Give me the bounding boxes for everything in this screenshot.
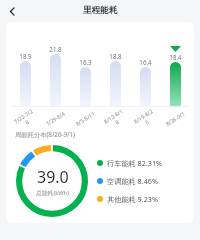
staticText: 18.4 bbox=[169, 53, 182, 61]
staticText: 18.8 bbox=[109, 52, 122, 60]
staticText: 8/12-8/18 bbox=[101, 107, 129, 131]
staticText: 8/19-8/25 bbox=[131, 107, 159, 131]
staticText: 18.9 bbox=[19, 52, 32, 60]
staticText: 其他能耗 9.23% bbox=[107, 194, 158, 204]
staticText: 8/5-8/11 bbox=[73, 109, 97, 128]
button[interactable]: 其他能耗 9.23% bbox=[97, 194, 158, 204]
staticText: 21.8 bbox=[49, 45, 62, 53]
staticText: 7/22-7/28 bbox=[11, 107, 39, 131]
staticText: 8/26-9/1 bbox=[163, 109, 187, 128]
staticText: 行车能耗 82.31% bbox=[107, 158, 162, 168]
staticText: 39.0 bbox=[37, 166, 69, 188]
staticText: 16.4 bbox=[139, 58, 152, 66]
button[interactable]: Back bbox=[3, 2, 21, 20]
staticText: 总能耗(kWh) bbox=[36, 189, 69, 197]
staticText: 里程能耗 bbox=[83, 5, 118, 16]
staticText: 7/29-8/4 bbox=[43, 109, 67, 128]
staticText: 空调能耗 8.46% bbox=[107, 176, 158, 186]
button[interactable]: 空调能耗 8.46% bbox=[97, 176, 158, 186]
button[interactable]: 行车能耗 82.31% bbox=[97, 158, 162, 168]
staticText: 16.3 bbox=[79, 58, 92, 66]
staticText: 周能耗分布(8/26-9/1) bbox=[15, 130, 75, 139]
